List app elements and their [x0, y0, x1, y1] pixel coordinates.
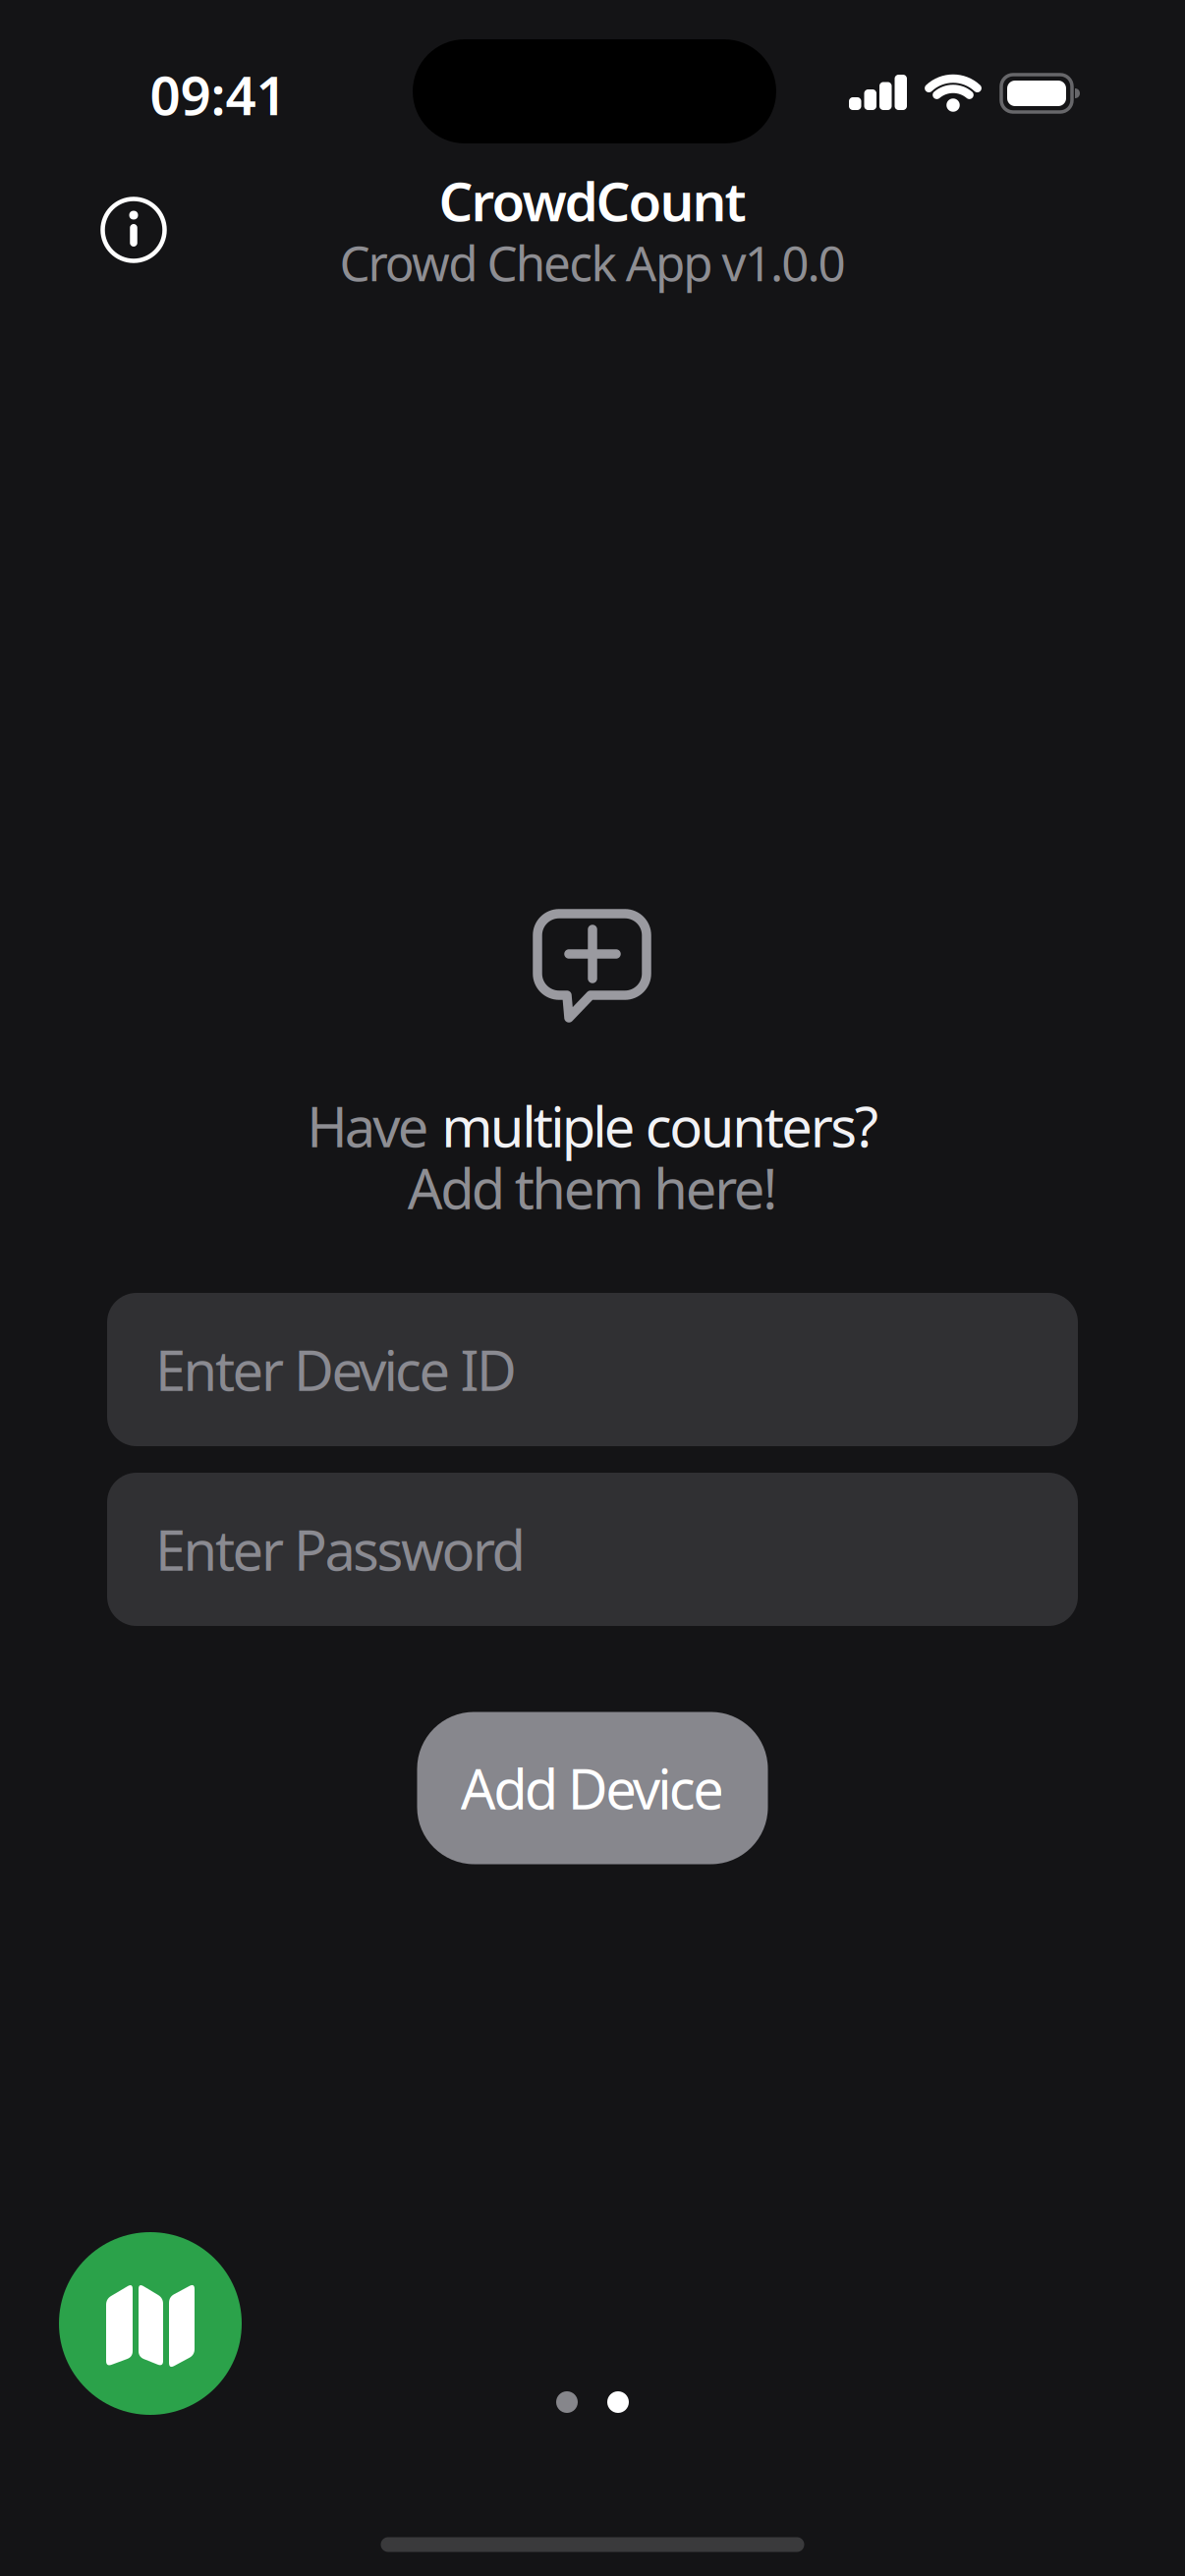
staticText: Enter Password [155, 1513, 525, 1586]
staticText: Crowd Check App v1.0.0 [339, 230, 846, 294]
staticText: multiple counters? [441, 1089, 878, 1162]
staticText: Have [307, 1089, 441, 1162]
button[interactable]: Page 2 [607, 2391, 629, 2413]
staticText: 09:41 [150, 59, 286, 130]
button[interactable]: Map [59, 2232, 242, 2415]
staticText: Add them here! [408, 1151, 778, 1224]
staticText: Enter Device ID [155, 1333, 517, 1406]
button[interactable]: Enter Password [107, 1473, 1078, 1626]
staticText: CrowdCount [439, 165, 746, 236]
staticText: Add Device [461, 1752, 724, 1825]
button[interactable]: Page 1 [556, 2391, 578, 2413]
button[interactable]: Add Device [417, 1712, 768, 1864]
button[interactable]: Info [101, 197, 166, 262]
button[interactable]: Enter Device ID [107, 1293, 1078, 1446]
